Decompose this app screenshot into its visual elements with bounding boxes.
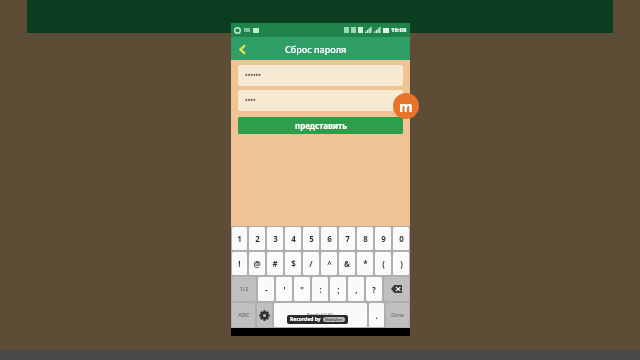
button[interactable]: *	[357, 252, 373, 275]
button[interactable]: Back	[231, 38, 253, 60]
staticText: @	[253, 258, 261, 269]
button[interactable]: представить	[238, 117, 403, 134]
staticText: ^	[327, 258, 332, 269]
staticText: !	[238, 258, 241, 269]
button[interactable]: /	[303, 252, 319, 275]
staticText: ,	[355, 284, 358, 295]
button[interactable]: 0	[393, 227, 409, 250]
button[interactable]: ;	[330, 277, 346, 301]
button[interactable]: )	[393, 252, 409, 275]
staticText: Recorded by	[290, 316, 321, 323]
staticText: 4	[291, 233, 296, 244]
button[interactable]: 4	[285, 227, 301, 250]
staticText: ••••	[245, 96, 256, 106]
button[interactable]: Backspace	[384, 277, 409, 301]
staticText: 9	[381, 233, 386, 244]
staticText: )	[400, 258, 403, 269]
staticText: ◄	[298, 313, 302, 318]
staticText: 5	[309, 233, 314, 244]
staticText: 19:08	[391, 26, 407, 34]
staticText: -	[265, 284, 268, 295]
button[interactable]: -	[258, 277, 274, 301]
button[interactable]: 5	[303, 227, 319, 250]
staticText: *	[363, 258, 368, 269]
staticText: ?	[372, 284, 376, 295]
staticText: ►	[339, 313, 343, 318]
staticText: "	[300, 284, 304, 295]
staticText: 0	[399, 233, 404, 244]
staticText: Сброс пароля	[285, 43, 347, 55]
button[interactable]: Space	[274, 303, 367, 327]
staticText: 2	[255, 233, 260, 244]
button[interactable]: ABC	[232, 303, 255, 327]
button[interactable]: 9	[375, 227, 391, 250]
staticText: 7	[345, 233, 350, 244]
staticText: (	[382, 258, 385, 269]
staticText: 1	[237, 233, 242, 244]
staticText: &	[344, 258, 350, 269]
button[interactable]: ,	[348, 277, 364, 301]
button[interactable]: $	[285, 252, 301, 275]
staticText: English(US)	[307, 312, 334, 319]
staticText: 8	[363, 233, 368, 244]
staticText: :	[319, 284, 322, 295]
staticText: Done	[391, 312, 404, 319]
staticText: представить	[295, 120, 347, 131]
button[interactable]: 2	[249, 227, 265, 250]
staticText: $	[291, 258, 296, 269]
button[interactable]: #	[267, 252, 283, 275]
button[interactable]: 7	[339, 227, 355, 250]
staticText: ABC	[238, 311, 250, 319]
button[interactable]: Keyboard settings	[257, 303, 272, 327]
button[interactable]: .	[369, 303, 384, 327]
staticText: 1/2	[239, 285, 249, 293]
button[interactable]: @	[249, 252, 265, 275]
staticText: /	[309, 258, 313, 269]
staticText: '	[283, 284, 286, 295]
button[interactable]: :	[312, 277, 328, 301]
button[interactable]: 3	[267, 227, 283, 250]
button[interactable]: 1	[232, 227, 247, 250]
button[interactable]: ••••••	[238, 65, 403, 86]
button[interactable]: ^	[321, 252, 337, 275]
staticText: m	[399, 97, 413, 116]
button[interactable]: ••••	[238, 90, 403, 111]
button[interactable]: 8	[357, 227, 373, 250]
button[interactable]: ?	[366, 277, 382, 301]
button[interactable]: 6	[321, 227, 337, 250]
button[interactable]: "	[294, 277, 310, 301]
button[interactable]: Done	[386, 303, 409, 327]
button[interactable]: &	[339, 252, 355, 275]
staticText: 3	[273, 233, 278, 244]
staticText: MobiZen	[325, 317, 343, 322]
staticText: .	[375, 310, 378, 321]
button[interactable]: (	[375, 252, 391, 275]
button[interactable]: !	[232, 252, 247, 275]
staticText: 6	[327, 233, 332, 244]
staticText: ••••••	[245, 71, 261, 81]
button[interactable]: 1/2	[232, 277, 256, 301]
staticText: ;	[337, 284, 340, 295]
button[interactable]: '	[276, 277, 292, 301]
staticText: #	[272, 258, 278, 269]
